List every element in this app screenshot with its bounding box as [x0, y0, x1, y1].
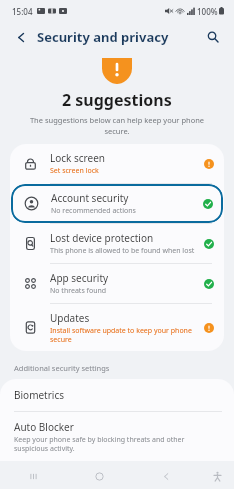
button[interactable]: Updates [10, 304, 224, 351]
button[interactable]: Lost device protection [10, 224, 224, 263]
staticText: Account security [51, 191, 129, 205]
staticText: Security and privacy [37, 28, 169, 46]
staticText: No threats found [50, 286, 107, 296]
button[interactable]: Auto Blocker [0, 412, 234, 461]
staticText: Keep your phone safe by blocking threats… [14, 435, 185, 453]
staticText: Auto Blocker [14, 420, 74, 434]
staticText: 15:04 [12, 6, 33, 17]
staticText: Lock screen [50, 151, 106, 165]
button[interactable]: Back [10, 26, 32, 48]
staticText: This phone is allowed to be found when l… [50, 246, 195, 256]
button[interactable]: Account security [11, 184, 223, 223]
staticText: Additional security settings [14, 363, 110, 373]
staticText: No recommended actions [51, 206, 136, 216]
button[interactable]: Search [202, 26, 224, 48]
button[interactable]: Biometrics [0, 379, 234, 411]
button[interactable]: Recent apps [0, 463, 66, 489]
button[interactable]: Lock screen [10, 144, 224, 183]
button[interactable]: Accessibility [200, 463, 234, 489]
staticText: The suggestions below can help keep your… [14, 115, 220, 136]
staticText: Install software update to keep your pho… [50, 326, 192, 344]
staticText: Updates [50, 311, 90, 325]
button[interactable]: App security [10, 264, 224, 303]
staticText: Set screen lock [50, 166, 99, 176]
button[interactable]: Home [66, 463, 133, 489]
staticText: App security [50, 271, 109, 285]
staticText: Lost device protection [50, 231, 154, 245]
staticText: Biometrics [14, 388, 65, 402]
staticText: 2 suggestions [62, 89, 172, 111]
staticText: 100% [197, 6, 218, 17]
